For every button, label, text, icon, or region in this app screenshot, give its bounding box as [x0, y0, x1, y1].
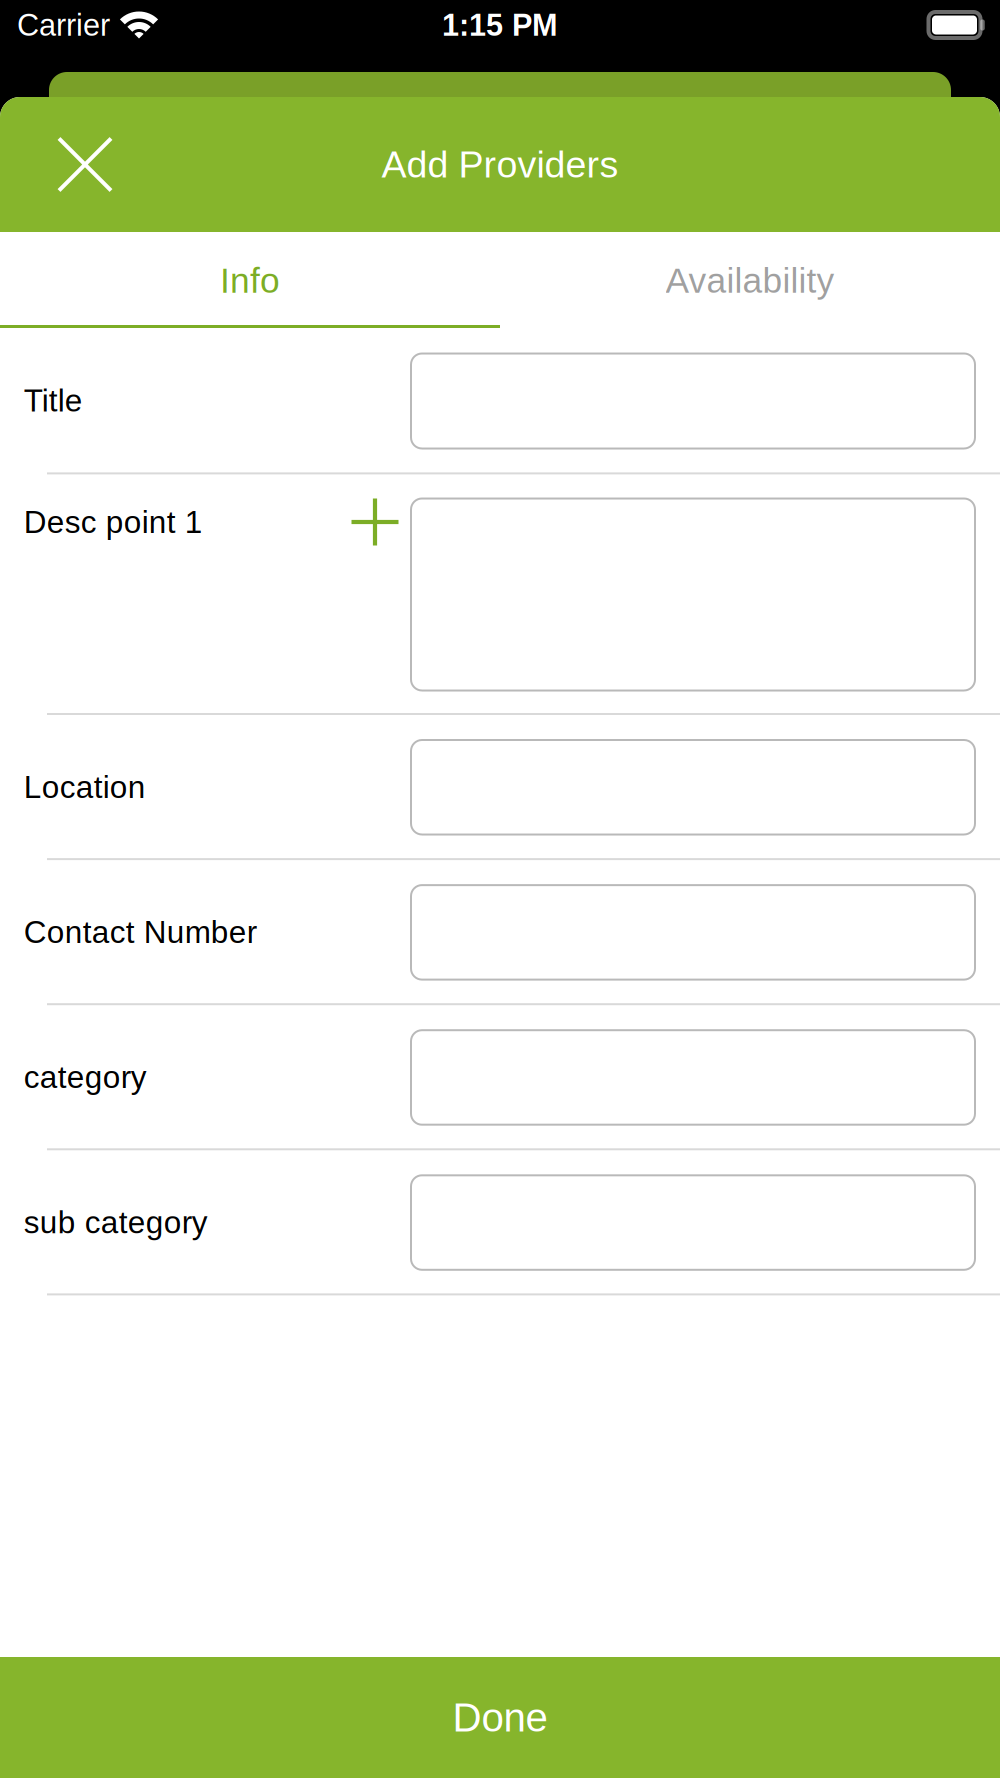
staticText: Done [452, 1695, 547, 1740]
button[interactable]: Contact Number field [411, 885, 975, 980]
staticText: Title [24, 383, 83, 418]
staticText: Availability [665, 261, 834, 300]
button[interactable]: Info [0, 232, 500, 325]
button[interactable]: Close [30, 97, 140, 232]
button[interactable]: sub category field [411, 1175, 975, 1270]
button[interactable]: Desc point 1 field [411, 498, 975, 690]
button[interactable]: Availability [500, 232, 1000, 325]
staticText: Carrier [17, 8, 110, 42]
button[interactable]: category field [411, 1030, 975, 1125]
button[interactable]: Add description point [347, 498, 403, 545]
staticText: Location [24, 769, 146, 805]
button[interactable]: Location field [411, 740, 975, 834]
button[interactable]: Done [0, 1657, 1000, 1778]
staticText: Desc point 1 [24, 504, 203, 540]
staticText: Contact Number [24, 914, 257, 950]
staticText: Add Providers [381, 143, 618, 185]
staticText: Info [220, 261, 280, 300]
staticText: 1:15 PM [442, 8, 558, 42]
staticText: sub category [24, 1205, 208, 1240]
staticText: category [24, 1060, 147, 1095]
button[interactable]: Title field [411, 353, 975, 448]
